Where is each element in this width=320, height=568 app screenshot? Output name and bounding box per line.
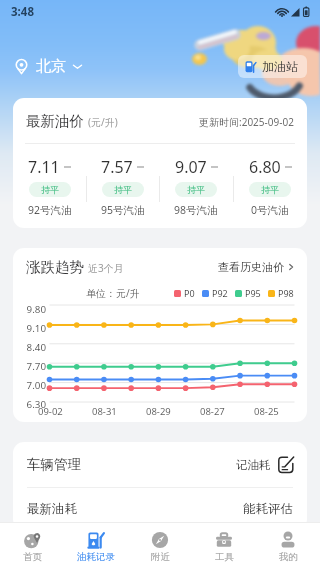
staticText: 08-29 [146,405,171,418]
button[interactable]: 7.57 [86,144,159,228]
button[interactable]: 车辆管理 [13,442,307,487]
staticText: 9.07 [175,156,207,178]
staticText: P95 [245,287,261,299]
staticText: 6.30 [15,398,46,411]
staticText: 记油耗 [236,458,271,472]
staticText: 更新时间:2025-09-02 [199,115,294,129]
staticText: 最新油耗 [27,501,77,517]
staticText: 北京 [36,57,66,76]
staticText: 08-31 [92,405,117,418]
button[interactable]: Nearby [128,523,192,568]
staticText: P98 [278,287,294,299]
staticText: 6.80 [249,156,281,178]
staticText: 能耗评估 [243,501,293,517]
staticText: 我的 [279,551,298,563]
staticText: P92 [212,287,228,299]
staticText: 7.00 [15,379,46,392]
button[interactable]: 6.80 [233,144,307,228]
staticText: 7.57 [101,156,133,178]
staticText: P0 [184,287,195,299]
button[interactable]: Tools [192,523,256,568]
button[interactable]: 加油站 [238,55,307,78]
staticText: 0号汽油 [251,203,289,217]
staticText: 95号汽油 [101,203,145,217]
staticText: 持平 [261,184,279,195]
staticText: 最新油价 [26,112,84,130]
staticText: 持平 [187,184,205,195]
button[interactable]: 北京 [13,53,82,80]
staticText: 单位：元/升 [86,286,140,300]
staticText: 09-02 [38,405,63,418]
button[interactable]: Fuel records [64,523,128,568]
staticText: 8.40 [15,341,46,354]
staticText: 92号汽油 [28,203,72,217]
button[interactable]: 查看历史油价 [218,260,295,274]
staticText: 查看历史油价 [218,260,284,274]
staticText: 附近 [151,551,170,563]
staticText: 08-25 [254,405,279,418]
staticText: 7.11 [28,156,60,178]
staticText: 持平 [41,184,59,195]
staticText: 车辆管理 [27,456,81,473]
staticText: 7.70 [15,360,46,373]
button[interactable]: 7.11 [13,144,86,228]
staticText: 近3个月 [88,261,124,275]
button[interactable]: Profile [256,523,320,568]
staticText: 9.10 [15,322,46,335]
staticText: (元/升) [88,115,118,129]
staticText: 08-27 [200,405,225,418]
staticText: 9.80 [15,303,46,316]
staticText: 持平 [114,184,132,195]
staticText: 首页 [23,551,42,563]
staticText: 工具 [215,551,234,563]
staticText: 98号汽油 [174,203,218,217]
staticText: 加油站 [262,59,298,74]
staticText: 3:48 [11,4,34,20]
button[interactable]: Home [0,523,64,568]
staticText: 涨跌趋势 [26,258,84,276]
button[interactable]: 9.07 [159,144,233,228]
staticText: 油耗记录 [77,551,115,563]
